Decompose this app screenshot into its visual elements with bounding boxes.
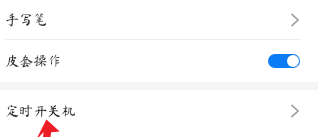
- button[interactable]: 皮套操作开关: [268, 54, 300, 68]
- staticText: 皮套操作: [5, 54, 62, 68]
- button[interactable]: 手写笔: [0, 0, 318, 40]
- button[interactable]: 定时开关机: [0, 90, 318, 132]
- staticText: 手写笔: [5, 13, 48, 27]
- button[interactable]: 定时开关机设置: [275, 91, 315, 131]
- staticText: 定时开关机: [5, 104, 76, 118]
- button[interactable]: 皮套操作: [0, 40, 318, 82]
- button[interactable]: 手写笔设置: [275, 0, 315, 40]
